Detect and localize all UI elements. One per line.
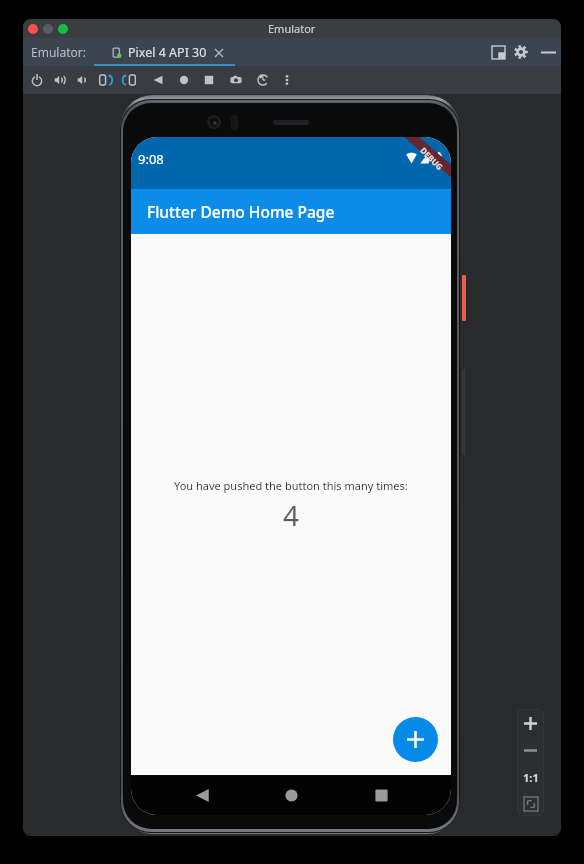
button[interactable]: Overview xyxy=(197,67,220,93)
staticText: 4 xyxy=(283,496,300,534)
staticText: Emulator: xyxy=(31,44,86,60)
staticText: DEBUG xyxy=(418,145,446,172)
button[interactable]: Pixel 4 API 30 xyxy=(94,38,235,66)
staticText: Emulator xyxy=(268,21,316,36)
button[interactable]: Zoom out xyxy=(517,737,544,764)
button[interactable]: More xyxy=(275,67,298,93)
button[interactable]: Window mode xyxy=(487,41,509,63)
button[interactable]: Minimize window xyxy=(43,24,53,34)
staticText: Pixel 4 API 30 xyxy=(128,44,207,61)
button[interactable]: Settings xyxy=(510,41,532,63)
button[interactable]: Recent apps xyxy=(362,776,400,814)
staticText: You have pushed the button this many tim… xyxy=(174,478,408,493)
staticText: Flutter Demo Home Page xyxy=(147,201,335,222)
button[interactable]: Rotate left xyxy=(94,67,117,93)
button[interactable]: Screenshot xyxy=(224,67,247,93)
button[interactable]: Power xyxy=(25,67,48,93)
staticText: 9:08 xyxy=(138,150,164,168)
button[interactable]: Maximize window xyxy=(58,24,68,34)
button[interactable]: Home xyxy=(172,67,195,93)
button[interactable]: Actual size xyxy=(517,764,544,791)
button[interactable]: Zoom in xyxy=(517,709,544,737)
button[interactable]: Home xyxy=(272,776,310,814)
button[interactable]: Volume down xyxy=(71,67,94,93)
button[interactable]: Minimize xyxy=(537,41,559,63)
button[interactable]: Volume up xyxy=(48,67,71,93)
button[interactable]: Close window xyxy=(28,24,38,34)
button[interactable]: Rotate right xyxy=(117,67,140,93)
button[interactable]: Back xyxy=(183,776,221,814)
button[interactable]: Increment xyxy=(393,717,438,762)
button[interactable]: History xyxy=(251,67,274,93)
button[interactable]: Back xyxy=(146,67,169,93)
staticText: 1:1 xyxy=(523,770,539,785)
button[interactable]: Fit to window xyxy=(517,791,544,816)
